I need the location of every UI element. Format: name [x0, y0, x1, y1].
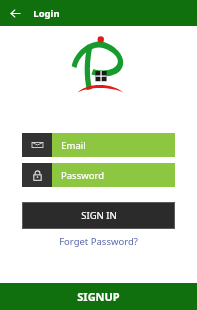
staticText: SIGN IN: [81, 209, 117, 222]
button[interactable]: Back: [7, 5, 24, 22]
button[interactable]: Forget Password?: [0, 235, 197, 248]
staticText: SIGNUP: [77, 289, 120, 304]
button[interactable]: Email: [22, 133, 175, 157]
staticText: Password: [61, 169, 104, 182]
button[interactable]: Password: [22, 163, 175, 187]
staticText: Forget Password?: [59, 235, 138, 248]
staticText: Email: [61, 139, 86, 152]
button[interactable]: SIGNUP: [0, 283, 197, 310]
button[interactable]: SIGN IN: [22, 202, 175, 229]
staticText: Login: [33, 7, 60, 20]
